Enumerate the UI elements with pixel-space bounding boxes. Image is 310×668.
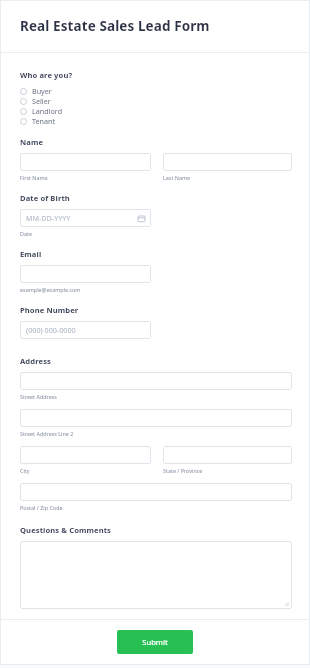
button[interactable]: MM-DD-YYYY: [20, 209, 151, 227]
staticText: Email: [20, 249, 42, 259]
button[interactable]: [20, 409, 292, 427]
button[interactable]: [20, 265, 151, 283]
staticText: Phone Number: [20, 305, 79, 315]
staticText: Real Estate Sales Lead Form: [20, 17, 210, 35]
staticText: First Name: [20, 174, 48, 181]
staticText: Landlord: [32, 106, 63, 116]
staticText: Who are you?: [20, 70, 73, 80]
staticText: Street Address: [20, 393, 57, 400]
staticText: City: [20, 467, 30, 474]
button[interactable]: Submit: [117, 630, 193, 654]
staticText: Date: [20, 230, 32, 237]
staticText: example@example.com: [20, 286, 81, 293]
staticText: MM-DD-YYYY: [26, 213, 71, 223]
staticText: Last Name: [163, 174, 190, 181]
staticText: Street Address Line 2: [20, 430, 74, 437]
staticText: Questions & Comments: [20, 525, 111, 535]
staticText: Date of Birth: [20, 193, 70, 203]
button[interactable]: [20, 483, 292, 501]
staticText: State / Province: [163, 467, 203, 474]
staticText: (000) 000-0000: [26, 325, 76, 335]
staticText: Buyer: [32, 86, 52, 96]
button[interactable]: [163, 153, 292, 171]
staticText: Seller: [32, 96, 51, 106]
button[interactable]: Buyer: [20, 86, 292, 96]
button[interactable]: [20, 446, 151, 464]
staticText: Tenant: [32, 116, 56, 126]
button[interactable]: Tenant: [20, 116, 292, 126]
button[interactable]: Seller: [20, 96, 292, 106]
button[interactable]: [20, 541, 292, 609]
button[interactable]: [163, 446, 292, 464]
staticText: Address: [20, 356, 51, 366]
staticText: Name: [20, 137, 44, 147]
button[interactable]: (000) 000-0000: [20, 321, 151, 339]
button[interactable]: [20, 153, 151, 171]
button[interactable]: Landlord: [20, 106, 292, 116]
button[interactable]: [20, 372, 292, 390]
staticText: Postal / Zip Code: [20, 504, 63, 511]
staticText: Submit: [142, 637, 168, 647]
